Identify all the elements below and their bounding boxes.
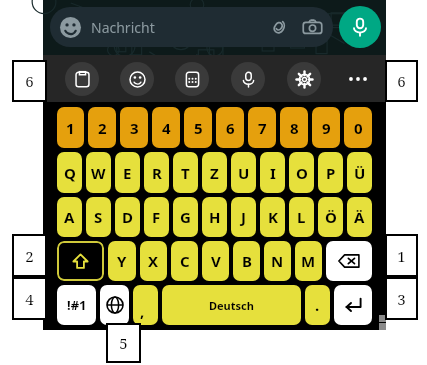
staticText: 2	[25, 246, 34, 266]
button[interactable]: I	[260, 152, 285, 193]
button[interactable]: M	[295, 241, 322, 281]
staticText: Q	[64, 163, 76, 183]
button[interactable]: D	[115, 197, 140, 237]
staticText: 3	[397, 289, 406, 309]
staticText: I	[270, 163, 276, 183]
staticText: Deutsch	[209, 298, 254, 313]
button[interactable]: Ö	[318, 197, 343, 237]
button[interactable]: O	[289, 152, 314, 193]
staticText: !#1	[67, 296, 87, 314]
button[interactable]: Stickers	[175, 62, 209, 96]
button[interactable]: V	[202, 241, 229, 281]
staticText: L	[297, 207, 306, 227]
button[interactable]: S	[86, 197, 111, 237]
staticText: V	[211, 251, 221, 271]
button[interactable]: Attach	[268, 17, 289, 38]
button[interactable]: Backspace	[326, 241, 372, 281]
button[interactable]: 9	[312, 107, 340, 148]
button[interactable]: G	[173, 197, 198, 237]
staticText: 6	[226, 118, 235, 138]
button[interactable]: Clipboard	[65, 62, 99, 96]
button[interactable]: Emoji	[50, 7, 333, 47]
button[interactable]: H	[202, 197, 227, 237]
button[interactable]: W	[86, 152, 111, 193]
staticText: 3	[130, 118, 139, 138]
button[interactable]: R	[144, 152, 169, 193]
button[interactable]: 3	[120, 107, 148, 148]
button[interactable]: Deutsch	[162, 285, 301, 325]
button[interactable]: Q	[57, 152, 82, 193]
staticText: 0	[354, 118, 363, 138]
button[interactable]: B	[233, 241, 260, 281]
staticText: P	[326, 163, 336, 183]
staticText: 7	[258, 118, 267, 138]
button[interactable]: Change language	[100, 285, 129, 325]
button[interactable]: A	[57, 197, 82, 237]
button[interactable]: 2	[88, 107, 116, 148]
button[interactable]: Camera	[302, 17, 323, 38]
button[interactable]: Emoji	[120, 62, 154, 96]
button[interactable]: 4	[152, 107, 180, 148]
button[interactable]: Voice message	[339, 6, 381, 48]
staticText: D	[122, 207, 133, 227]
staticText: K	[268, 207, 278, 227]
button[interactable]: Voice input	[231, 62, 265, 96]
staticText: Ü	[354, 163, 366, 183]
button[interactable]: J	[231, 197, 256, 237]
staticText: Z	[210, 163, 219, 183]
button[interactable]: N	[264, 241, 291, 281]
button[interactable]: C	[171, 241, 198, 281]
button[interactable]: ,	[133, 285, 158, 325]
button[interactable]: Enter	[334, 285, 372, 325]
staticText: U	[238, 163, 250, 183]
button[interactable]: Emoji	[60, 17, 81, 38]
staticText: B	[242, 251, 252, 271]
staticText: Nachricht	[91, 18, 155, 37]
staticText: 5	[119, 333, 128, 353]
button[interactable]: !#1	[57, 285, 96, 325]
staticText: J	[241, 207, 246, 227]
button[interactable]: 8	[280, 107, 308, 148]
staticText: 4	[162, 118, 171, 138]
button[interactable]: F	[144, 197, 169, 237]
staticText: A	[64, 207, 75, 227]
staticText: Y	[117, 251, 127, 271]
button[interactable]: E	[115, 152, 140, 193]
staticText: G	[180, 207, 191, 227]
button[interactable]: X	[140, 241, 167, 281]
staticText: N	[271, 251, 284, 271]
staticText: .	[315, 295, 320, 315]
staticText: 6	[25, 71, 34, 91]
staticText: C	[180, 251, 190, 271]
staticText: F	[152, 207, 161, 227]
button[interactable]: Ü	[347, 152, 372, 193]
button[interactable]: More options	[343, 64, 373, 94]
button[interactable]: 0	[344, 107, 372, 148]
staticText: H	[209, 207, 221, 227]
staticText: W	[91, 163, 106, 183]
button[interactable]: K	[260, 197, 285, 237]
button[interactable]: L	[289, 197, 314, 237]
button[interactable]: 6	[216, 107, 244, 148]
button[interactable]: .	[305, 285, 330, 325]
button[interactable]: T	[173, 152, 198, 193]
button[interactable]: P	[318, 152, 343, 193]
button[interactable]: Y	[108, 241, 136, 281]
staticText: S	[94, 207, 103, 227]
staticText: Ö	[325, 207, 337, 227]
staticText: E	[123, 163, 132, 183]
staticText: R	[152, 163, 162, 183]
button[interactable]: 5	[184, 107, 212, 148]
staticText: 1	[66, 118, 75, 138]
button[interactable]: Shift	[57, 241, 104, 281]
staticText: X	[148, 251, 159, 271]
staticText: 8	[290, 118, 299, 138]
button[interactable]: 7	[248, 107, 276, 148]
button[interactable]: 1	[57, 107, 84, 148]
button[interactable]: Z	[202, 152, 227, 193]
staticText: M	[301, 251, 316, 271]
button[interactable]: Ä	[347, 197, 372, 237]
button[interactable]: Settings	[287, 62, 321, 96]
staticText: 6	[397, 71, 406, 91]
button[interactable]: U	[231, 152, 256, 193]
